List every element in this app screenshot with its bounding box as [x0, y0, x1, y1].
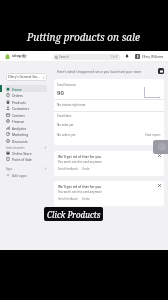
staticText: Ellery's General Sto...: [8, 75, 42, 79]
staticText: Point of Sale: [12, 157, 32, 161]
staticText: Search: [59, 55, 69, 59]
staticText: Home: [12, 87, 22, 91]
button[interactable]: Point of Sale: [5, 155, 47, 162]
button[interactable]: Search: [53, 54, 120, 60]
button[interactable]: Orders: [5, 91, 47, 98]
button[interactable]: Ellery's General Sto...: [6, 73, 47, 81]
staticText: Here's what's happened since you launche…: [57, 69, 142, 73]
button[interactable]: E: [135, 54, 164, 59]
button[interactable]: Undo: [82, 167, 90, 171]
staticText: Ellery Williams: [142, 55, 164, 59]
staticText: Click Products: [47, 209, 101, 220]
staticText: Sales channels: [6, 146, 25, 150]
staticText: Add apps: [12, 173, 27, 177]
button[interactable]: Customers: [5, 104, 47, 111]
staticText: Ctrl K: [111, 55, 118, 59]
staticText: Analytics: [12, 126, 27, 130]
button[interactable]: Undo: [82, 197, 90, 201]
button[interactable]: Expand: [158, 68, 164, 74]
button[interactable]: Dismiss: [157, 153, 162, 158]
button[interactable]: Discounts: [5, 137, 47, 144]
staticText: You won't see this card anymore: [58, 160, 102, 164]
staticText: No visitors right now: [57, 103, 86, 107]
staticText: Discounts: [12, 139, 28, 143]
staticText: Online Store: [12, 151, 32, 155]
staticText: Content: [12, 113, 25, 117]
staticText: shopify: [12, 53, 27, 59]
staticText: Apps: [6, 167, 13, 171]
button[interactable]: Add apps: [5, 171, 47, 178]
button[interactable]: Notifications: [124, 53, 130, 59]
staticText: Marketing: [12, 132, 29, 136]
button[interactable]: Content: [5, 111, 47, 118]
button[interactable]: Analytics: [5, 124, 47, 131]
button[interactable]: Finance: [5, 117, 47, 124]
staticText: No orders yet: [57, 133, 76, 137]
staticText: Products: [12, 100, 26, 104]
staticText: We'll get rid of that for you: [58, 154, 102, 158]
button[interactable]: Online Store: [5, 149, 47, 156]
staticText: E: [137, 55, 139, 59]
staticText: Total Sales: [57, 114, 72, 118]
staticText: Total Sessions: [57, 83, 76, 87]
button[interactable]: Send feedback: [58, 197, 78, 201]
staticText: Putting products on sale: [27, 30, 141, 44]
staticText: We'll get rid of that for you: [58, 184, 102, 188]
staticText: Orders: [12, 93, 23, 97]
button[interactable]: Marketing: [5, 130, 47, 137]
button[interactable]: Products: [5, 98, 47, 105]
staticText: You won't see this card anymore: [58, 190, 102, 194]
staticText: 90: [57, 89, 64, 97]
staticText: No sales yet: [57, 123, 74, 127]
staticText: Customers: [12, 106, 30, 110]
button[interactable]: Home: [5, 85, 47, 92]
staticText: Finance: [12, 119, 25, 123]
button[interactable]: Dismiss: [157, 183, 162, 188]
button[interactable]: View report: [145, 133, 164, 137]
button[interactable]: Send feedback: [58, 167, 78, 171]
